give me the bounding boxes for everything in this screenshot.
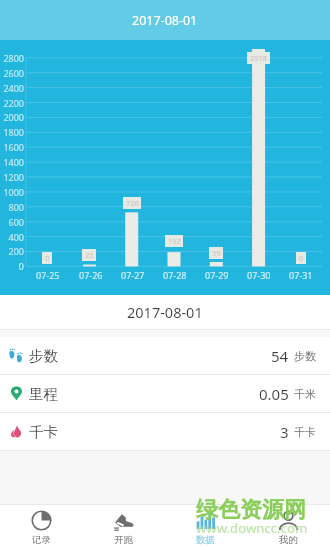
staticText: 2400 bbox=[0, 82, 24, 94]
staticText: 07-25 bbox=[36, 269, 60, 281]
staticText: 步数 bbox=[294, 349, 316, 363]
staticText: 07-26 bbox=[79, 269, 103, 281]
staticText: 07-27 bbox=[121, 269, 145, 281]
staticText: 400 bbox=[0, 231, 24, 243]
button[interactable]: 记录 bbox=[0, 505, 82, 550]
staticText: 25 bbox=[85, 250, 94, 260]
button[interactable]: 步数 bbox=[0, 337, 330, 374]
staticText: 800 bbox=[0, 201, 24, 213]
staticText: 记录 bbox=[32, 534, 51, 546]
button[interactable]: 开跑 bbox=[82, 505, 164, 550]
staticText: 192 bbox=[168, 236, 181, 246]
staticText: 1200 bbox=[0, 171, 24, 183]
staticText: 07-29 bbox=[205, 269, 229, 281]
staticText: 0.05 bbox=[259, 384, 289, 404]
staticText: 2600 bbox=[0, 67, 24, 79]
button[interactable]: 2017-08-01 bbox=[0, 0, 330, 40]
staticText: 里程 bbox=[29, 385, 58, 403]
staticText: 1000 bbox=[0, 186, 24, 198]
button[interactable]: 我的 bbox=[247, 505, 330, 550]
staticText: 07-30 bbox=[247, 269, 271, 281]
staticText: 开跑 bbox=[114, 534, 133, 546]
staticText: 0 bbox=[299, 253, 304, 263]
button[interactable]: 千卡 bbox=[0, 413, 330, 450]
staticText: 3 bbox=[280, 422, 289, 442]
staticText: 1600 bbox=[0, 141, 24, 153]
staticText: 1400 bbox=[0, 156, 24, 168]
staticText: 千卡 bbox=[29, 423, 58, 441]
staticText: 2200 bbox=[0, 97, 24, 109]
staticText: 0 bbox=[45, 253, 50, 263]
button[interactable]: 里程 bbox=[0, 375, 330, 412]
button[interactable]: 数据 bbox=[164, 505, 247, 550]
staticText: 200 bbox=[0, 245, 24, 257]
staticText: 步数 bbox=[29, 347, 58, 365]
staticText: 2017-08-01 bbox=[127, 302, 203, 322]
staticText: 726 bbox=[126, 198, 139, 208]
staticText: 2800 bbox=[0, 52, 24, 64]
staticText: 我的 bbox=[279, 534, 298, 546]
staticText: 1800 bbox=[0, 126, 24, 138]
staticText: 千卡 bbox=[294, 425, 316, 439]
staticText: 07-31 bbox=[289, 269, 313, 281]
staticText: 07-28 bbox=[163, 269, 187, 281]
staticText: 绿色资源网 bbox=[196, 496, 306, 524]
staticText: 千米 bbox=[294, 387, 316, 401]
staticText: 2918 bbox=[250, 53, 268, 63]
staticText: 2000 bbox=[0, 111, 24, 123]
staticText: www.downcc.com bbox=[196, 519, 308, 537]
staticText: 59 bbox=[212, 248, 221, 258]
staticText: 54 bbox=[271, 346, 289, 366]
staticText: 600 bbox=[0, 216, 24, 228]
staticText: 0 bbox=[0, 260, 24, 272]
staticText: 2017-08-01 bbox=[132, 12, 198, 29]
staticText: 数据 bbox=[196, 534, 215, 546]
